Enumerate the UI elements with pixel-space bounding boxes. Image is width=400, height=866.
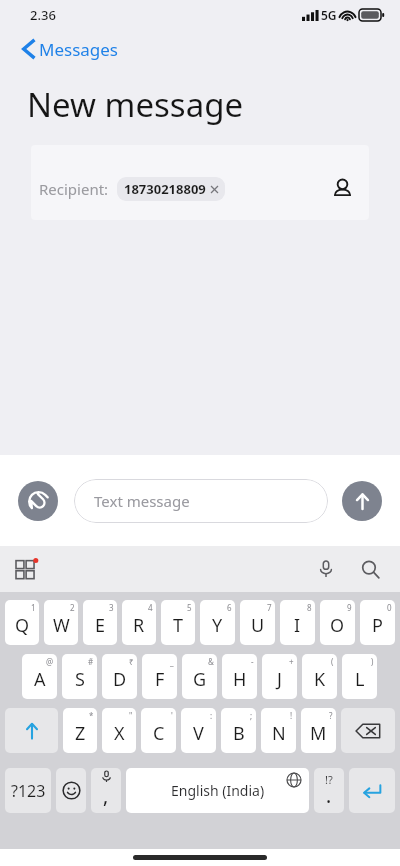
button[interactable]: 4 [122, 600, 156, 645]
button[interactable]: Add contact [327, 174, 357, 204]
staticText: Z [75, 721, 86, 746]
button[interactable]: Attach file [18, 481, 58, 521]
staticText: 2.36 [30, 6, 56, 24]
button[interactable]: ?123 [5, 768, 51, 813]
staticText: ' [171, 710, 173, 721]
button[interactable]: 6 [200, 600, 235, 645]
button[interactable]: Toolbox [12, 554, 42, 584]
staticText: T [173, 613, 184, 638]
staticText: ( [331, 656, 334, 667]
staticText: . [326, 783, 332, 809]
button[interactable]: 3 [83, 600, 117, 645]
staticText: P [372, 613, 383, 638]
button[interactable]: : [181, 708, 216, 753]
staticText: Messages [39, 38, 119, 61]
staticText: 1 [31, 602, 36, 613]
staticText: ) [371, 656, 374, 667]
staticText: B [233, 721, 245, 746]
button[interactable]: ; [221, 708, 256, 753]
button[interactable]: * [63, 708, 97, 753]
button[interactable]: ' [141, 708, 176, 753]
staticText: 18730218809 [124, 180, 206, 198]
staticText: 6 [227, 602, 232, 613]
button[interactable]: 0 [360, 600, 395, 645]
button[interactable]: Text message [74, 479, 328, 523]
staticText: A [34, 667, 46, 692]
staticText: H [233, 667, 247, 692]
button[interactable]: Recipient: [31, 145, 369, 220]
staticText: N [272, 721, 286, 746]
button[interactable]: Send [342, 481, 382, 521]
staticText: S [75, 667, 85, 692]
button[interactable]: ₹ [102, 654, 137, 699]
button[interactable]: ! [261, 708, 296, 753]
button[interactable]: Search [354, 553, 386, 585]
button[interactable]: @ [22, 654, 57, 699]
staticText: ₹ [129, 656, 134, 667]
staticText: 9 [347, 602, 352, 613]
button[interactable]: + [262, 654, 297, 699]
staticText: , [103, 783, 109, 809]
staticText: @ [46, 656, 54, 667]
staticText: O [330, 613, 345, 638]
button[interactable]: 1 [5, 600, 39, 645]
staticText: M [310, 721, 327, 746]
staticText: Y [212, 613, 223, 638]
staticText: I [294, 613, 301, 638]
button[interactable]: English (India) [126, 768, 309, 813]
button[interactable]: Voice input [310, 553, 342, 585]
staticText: E [95, 613, 106, 638]
button[interactable]: !? [314, 768, 344, 813]
staticText: English (India) [171, 781, 265, 800]
staticText: K [314, 667, 326, 692]
staticText: X [114, 721, 125, 746]
staticText: Text message [94, 491, 190, 511]
button[interactable]: Enter [349, 768, 395, 813]
staticText: " [129, 710, 133, 721]
staticText: F [155, 667, 165, 692]
button[interactable]: - [222, 654, 257, 699]
staticText: : [210, 710, 213, 721]
button[interactable]: ( [302, 654, 337, 699]
staticText: D [113, 667, 127, 692]
button[interactable]: , [91, 768, 121, 813]
staticText: ! [290, 710, 293, 721]
button[interactable]: 18730218809 [117, 177, 225, 201]
staticText: L [355, 667, 365, 692]
staticText: 0 [387, 602, 392, 613]
button[interactable]: 8 [280, 600, 315, 645]
button[interactable]: ? [301, 708, 336, 753]
staticText: W [53, 613, 70, 638]
button[interactable]: Messages [0, 30, 400, 68]
button[interactable]: _ [142, 654, 177, 699]
staticText: New message [27, 82, 244, 127]
staticText: R [133, 613, 145, 638]
staticText: _ [170, 656, 174, 667]
staticText: 4 [148, 602, 153, 613]
staticText: 5G [321, 7, 337, 23]
button[interactable]: Backspace [341, 708, 395, 753]
button[interactable]: Emoji [56, 768, 86, 813]
staticText: - [251, 656, 254, 667]
staticText: & [208, 656, 214, 667]
button[interactable]: # [62, 654, 97, 699]
button[interactable]: 2 [44, 600, 78, 645]
staticText: ?123 [11, 780, 46, 802]
staticText: 8 [307, 602, 312, 613]
button[interactable]: " [102, 708, 136, 753]
staticText: C [153, 721, 165, 746]
staticText: # [88, 656, 94, 667]
staticText: ; [250, 710, 253, 721]
button[interactable]: ) [342, 654, 377, 699]
staticText: ? [329, 710, 333, 721]
staticText: 7 [267, 602, 272, 613]
staticText: G [193, 667, 207, 692]
staticText: 3 [109, 602, 114, 613]
button[interactable]: Shift [5, 708, 58, 753]
button[interactable]: 5 [161, 600, 195, 645]
button[interactable]: & [182, 654, 217, 699]
button[interactable]: 7 [240, 600, 275, 645]
staticText: * [89, 710, 94, 721]
staticText: V [193, 721, 204, 746]
button[interactable]: 9 [320, 600, 355, 645]
